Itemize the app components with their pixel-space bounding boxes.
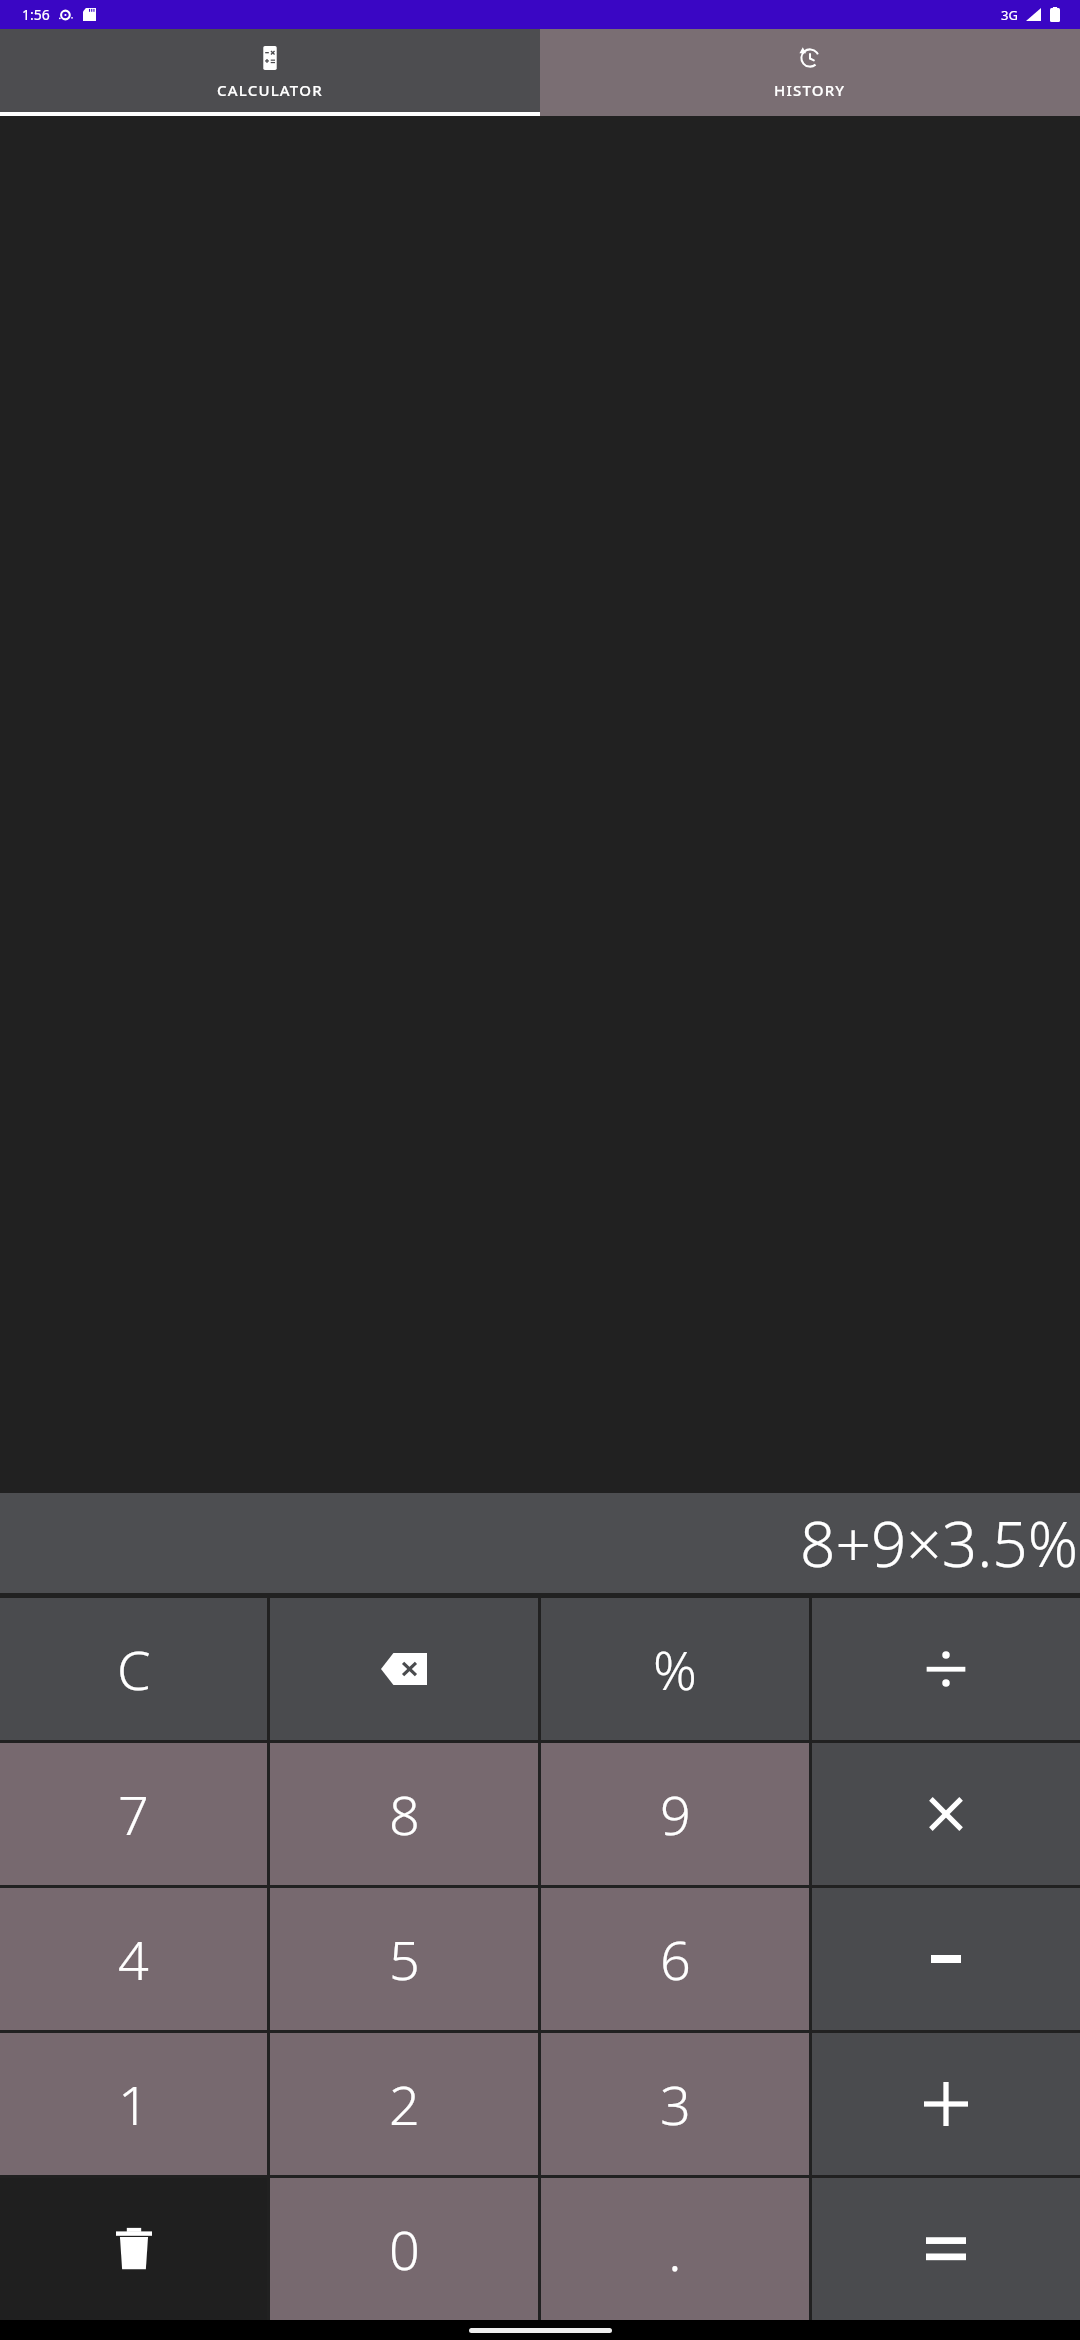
staticText: 1:56 — [22, 5, 50, 24]
button[interactable]: HISTORY — [540, 29, 1080, 116]
button[interactable]: 8 — [270, 1743, 538, 1885]
button[interactable]: 6 — [541, 1888, 809, 2030]
button[interactable]: 4 — [0, 1888, 267, 2030]
button[interactable]: C — [0, 1598, 267, 1740]
staticText: 0 — [389, 2212, 420, 2286]
button[interactable] — [812, 1888, 1080, 2030]
staticText: 6 — [660, 1922, 691, 1996]
button[interactable]: 3 — [541, 2033, 809, 2175]
button[interactable]: 9 — [541, 1743, 809, 1885]
button[interactable]: Backspace — [270, 1598, 538, 1740]
button[interactable]: 2 — [270, 2033, 538, 2175]
staticText: CALCULATOR — [217, 80, 323, 100]
button[interactable]: % — [541, 1598, 809, 1740]
staticText: 3 — [660, 2067, 691, 2141]
staticText: 2 — [389, 2067, 420, 2141]
staticText: 1 — [118, 2067, 149, 2141]
staticText: 9 — [660, 1777, 691, 1851]
staticText: 8+9×3.5% — [800, 1501, 1078, 1585]
staticText: 8 — [389, 1777, 420, 1851]
button[interactable] — [812, 2033, 1080, 2175]
staticText: 7 — [118, 1777, 149, 1851]
staticText: HISTORY — [774, 80, 846, 100]
staticText: . — [668, 2211, 682, 2287]
staticText: C — [117, 1632, 151, 1706]
staticText: 5 — [389, 1922, 420, 1996]
button[interactable]: CALCULATOR — [0, 29, 540, 116]
button[interactable] — [812, 1743, 1080, 1885]
button[interactable] — [812, 2178, 1080, 2320]
button[interactable] — [812, 1598, 1080, 1740]
button[interactable]: . — [541, 2178, 809, 2320]
button[interactable]: 5 — [270, 1888, 538, 2030]
button[interactable]: 7 — [0, 1743, 267, 1885]
button[interactable]: Clear history — [0, 2178, 267, 2320]
button[interactable]: 1 — [0, 2033, 267, 2175]
button[interactable]: 0 — [270, 2178, 538, 2320]
staticText: % — [653, 1632, 697, 1706]
staticText: 3G — [1001, 6, 1018, 24]
staticText: 4 — [118, 1922, 149, 1996]
